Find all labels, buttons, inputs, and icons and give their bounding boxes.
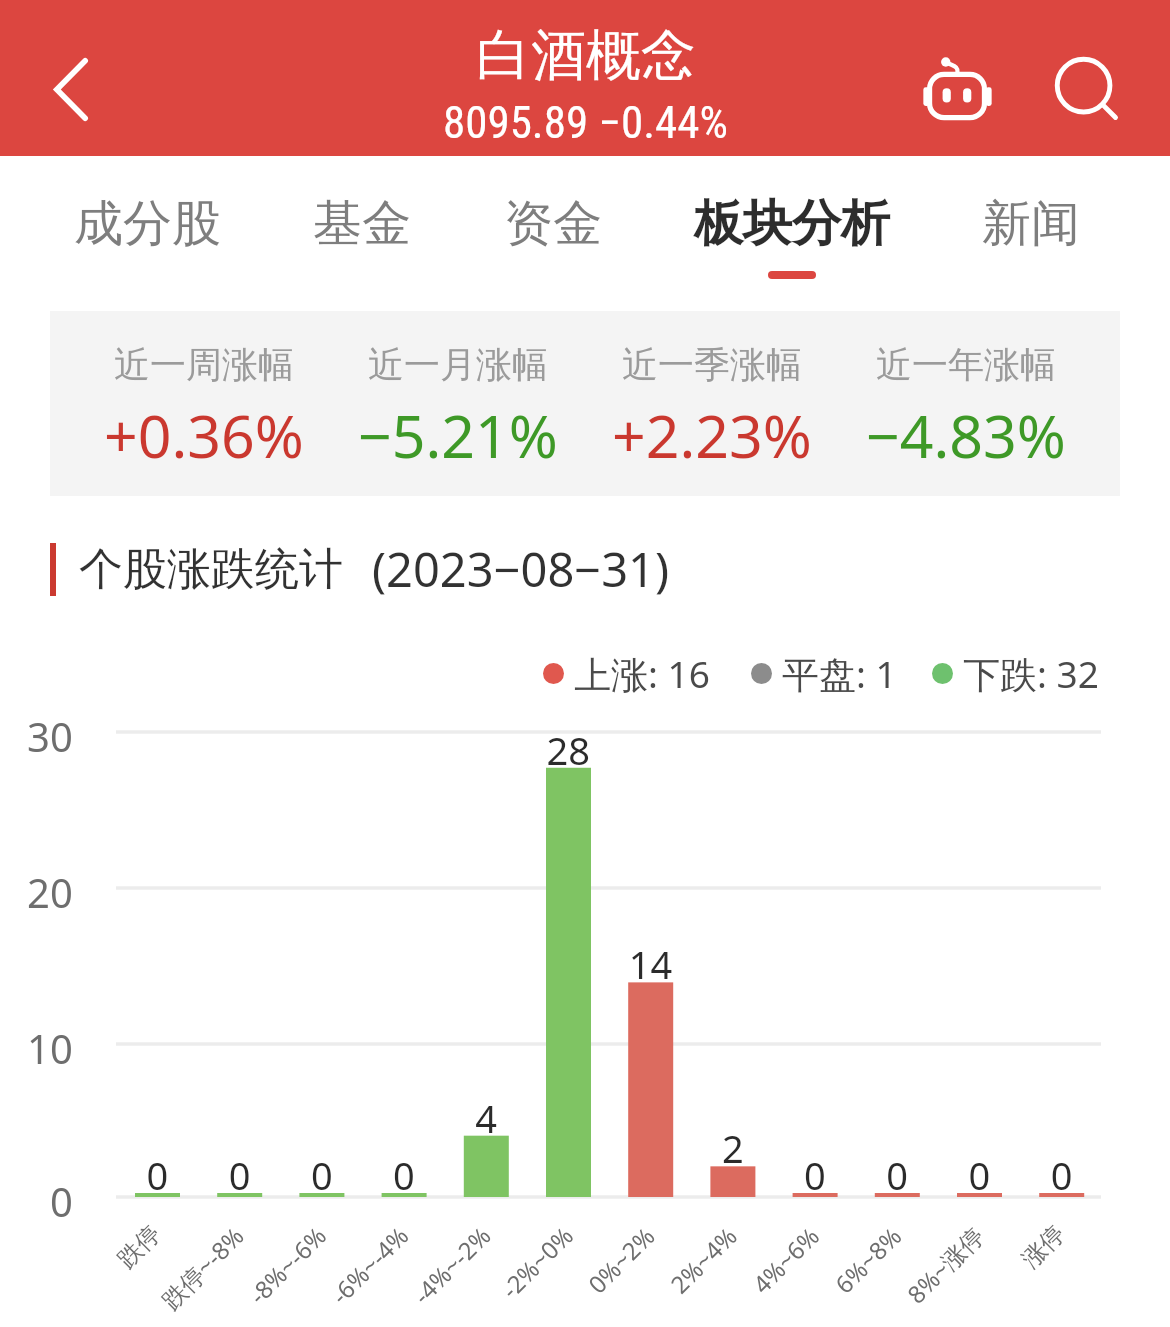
- staticText: +2.23%: [612, 395, 812, 475]
- staticText: 资金: [504, 193, 602, 255]
- staticText: 成分股: [74, 193, 221, 255]
- button[interactable]: Back: [0, 0, 140, 156]
- staticText: 近一月涨幅: [368, 342, 548, 387]
- staticText: 基金: [313, 193, 411, 255]
- button[interactable]: 新闻: [956, 181, 1106, 291]
- staticText: 下跌: 32: [963, 648, 1099, 699]
- button[interactable]: AI assistant: [892, 28, 1022, 148]
- staticText: 近一年涨幅: [876, 342, 1056, 387]
- staticText: +0.36%: [104, 395, 304, 475]
- staticText: 新闻: [982, 193, 1080, 255]
- staticText: 平盘: 1: [782, 648, 897, 699]
- button[interactable]: 基金: [287, 181, 437, 291]
- button[interactable]: 板块分析: [668, 181, 916, 291]
- staticText: −4.83%: [866, 395, 1066, 475]
- staticText: 8095.89 −0.44%: [443, 96, 728, 149]
- staticText: (2023−08−31): [372, 537, 670, 601]
- staticText: 上涨: 16: [574, 648, 710, 699]
- staticText: 板块分析: [694, 193, 890, 255]
- button[interactable]: 资金: [478, 181, 628, 291]
- staticText: 白酒概念: [476, 21, 696, 90]
- button[interactable]: 成分股: [48, 181, 247, 291]
- button[interactable]: Search: [1022, 28, 1152, 148]
- staticText: 个股涨跌统计: [79, 542, 343, 597]
- staticText: −5.21%: [358, 395, 558, 475]
- staticText: 近一季涨幅: [622, 342, 802, 387]
- staticText: 近一周涨幅: [114, 342, 294, 387]
